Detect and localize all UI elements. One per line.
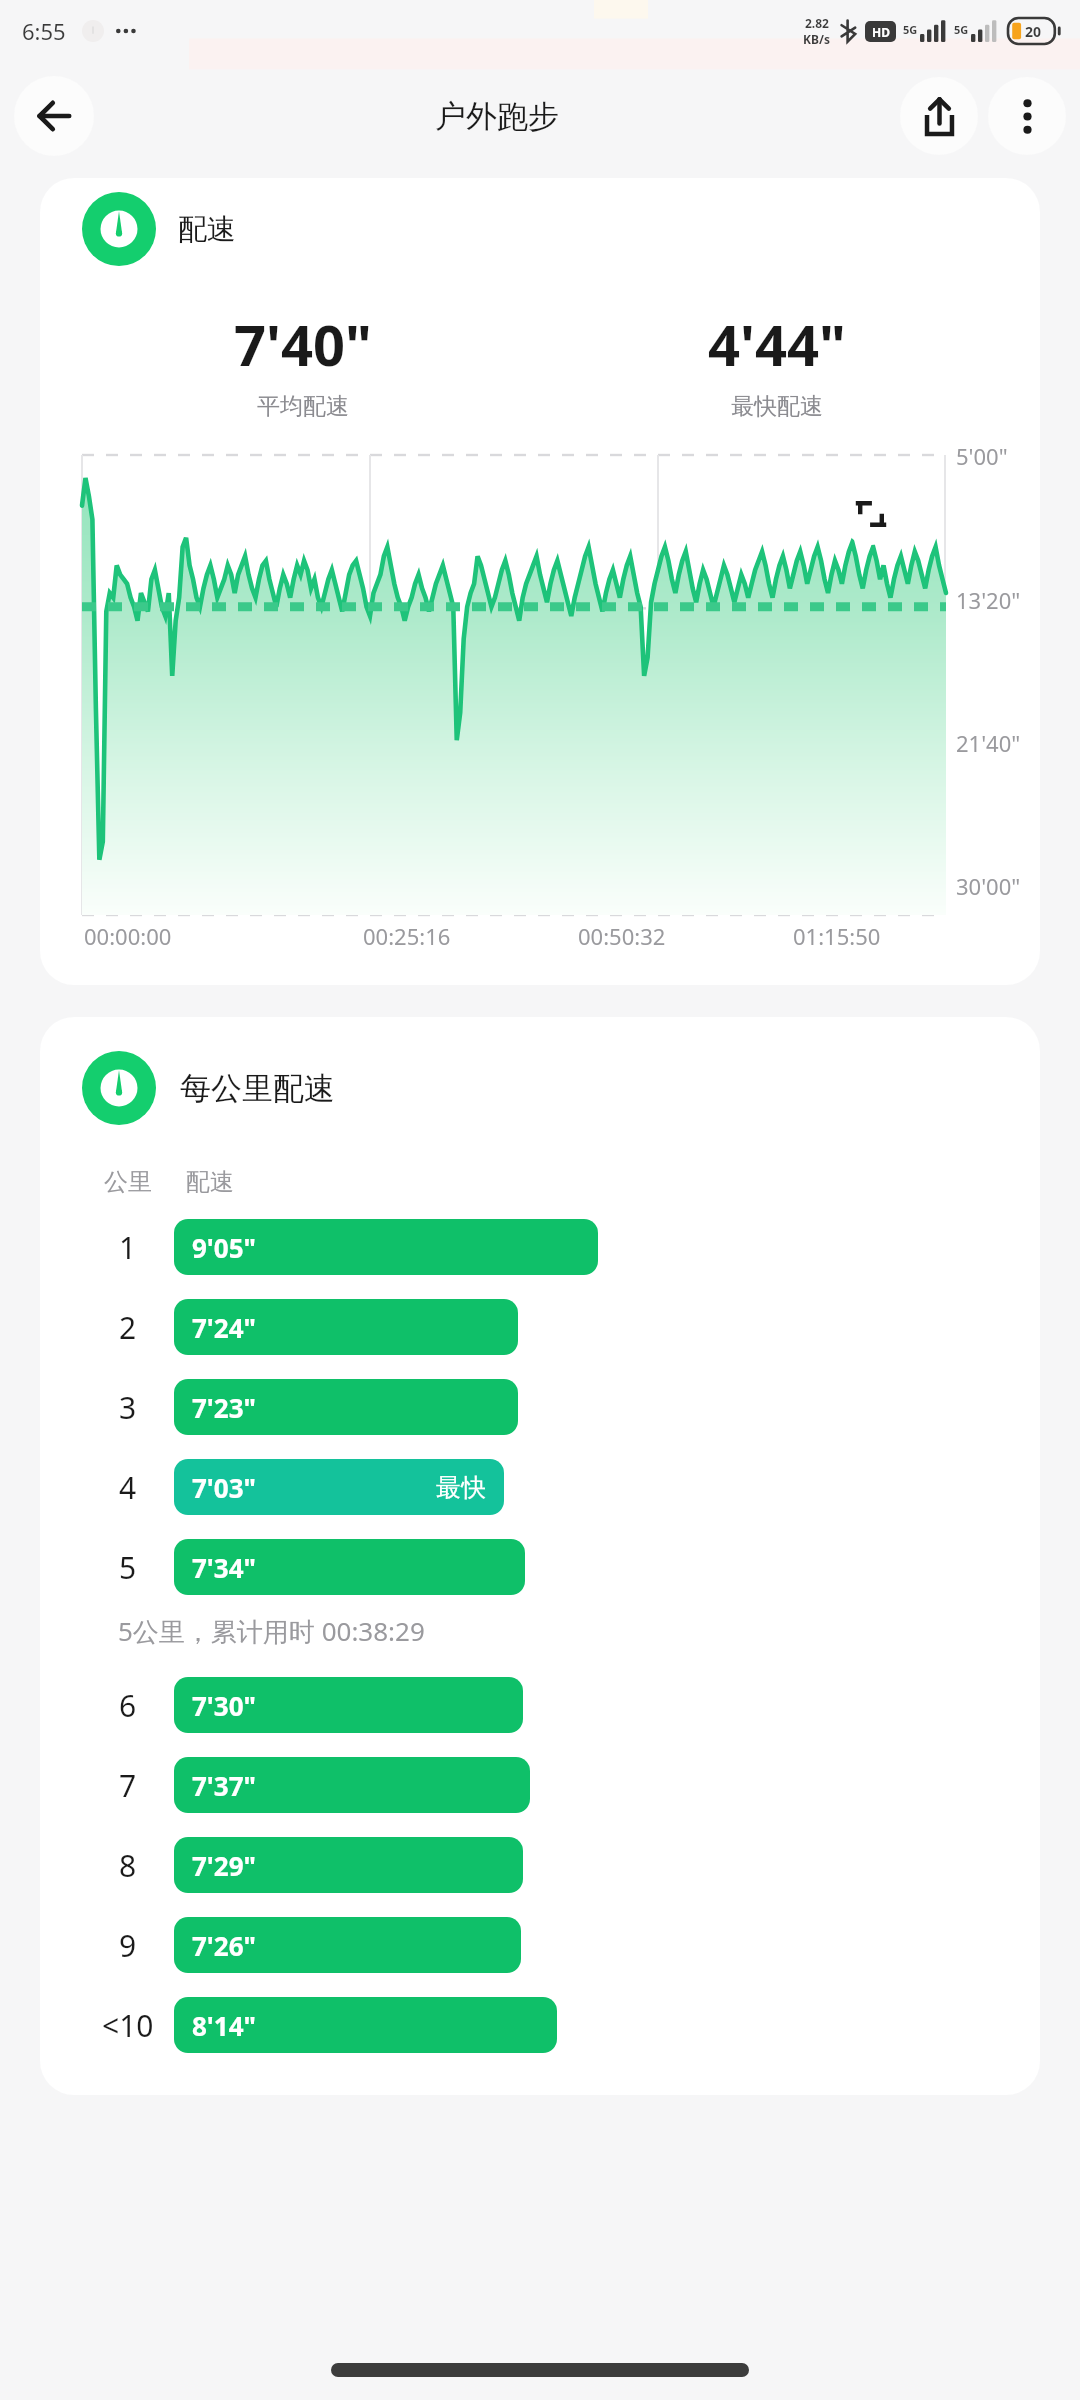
staticText: 5G [903,22,918,37]
staticText: 5公里，累计用时 00:38:29 [118,1613,425,1649]
staticText: KB/s [803,31,830,47]
staticText: 4 [119,1467,137,1508]
staticText: 5 [119,1547,137,1588]
staticText: 7 [119,1765,137,1806]
button[interactable]: 7 [82,1745,998,1825]
staticText: 配速 [186,1167,234,1197]
staticText: 最快 [436,1472,486,1503]
staticText: HD [872,24,890,40]
staticText: 8 [119,1845,137,1886]
button[interactable]: 配速 [82,192,1040,266]
staticText: 户外跑步 [435,97,559,136]
button[interactable]: Share [900,77,978,155]
staticText: 6 [119,1685,137,1726]
staticText: 公里 [104,1167,152,1197]
staticText: 2 [119,1307,137,1348]
staticText: 2.82 [805,15,829,31]
button[interactable]: 每公里配速 [82,1051,1040,1125]
staticText: 7'26" [192,1928,256,1963]
button[interactable]: Back [14,76,94,156]
staticText: 7'23" [192,1390,256,1425]
staticText: 平均配速 [257,392,349,421]
staticText: 7'03" [192,1470,256,1505]
button[interactable]: 1 [82,1207,998,1287]
staticText: 8'14" [192,2008,256,2043]
button[interactable]: More options [988,77,1066,155]
staticText: 21'40" [956,728,1021,758]
button[interactable]: 9 [82,1905,998,1985]
staticText: 7'24" [192,1310,256,1345]
staticText: 00:50:32 [578,921,666,951]
staticText: 每公里配速 [180,1069,335,1108]
staticText: 00:25:16 [363,921,451,951]
staticText: 最快配速 [731,392,823,421]
button[interactable]: 5 [82,1527,998,1607]
button[interactable]: 2 [82,1287,998,1367]
staticText: 配速 [178,211,236,248]
staticText: 00:00:00 [84,921,172,951]
staticText: 7'30" [192,1688,256,1723]
staticText: 9 [119,1925,137,1966]
staticText: 4'44" [708,306,846,382]
staticText: 7'29" [192,1848,256,1883]
staticText: 7'37" [192,1768,256,1803]
staticText: 7'40" [234,306,372,382]
staticText: 13'20" [956,585,1021,615]
staticText: 30'00" [956,871,1021,901]
staticText: 7'34" [192,1550,256,1585]
button[interactable]: 8 [82,1825,998,1905]
button[interactable]: 3 [82,1367,998,1447]
button[interactable]: <10 [82,1985,998,2065]
staticText: 9'05" [192,1230,256,1265]
staticText: 6:55 [22,16,66,46]
staticText: 5G [954,22,969,37]
staticText: 1 [119,1227,137,1268]
staticText: 20 [1025,22,1042,41]
button[interactable]: 4 [82,1447,998,1527]
staticText: 3 [119,1387,137,1428]
button[interactable]: Fullscreen [840,483,902,545]
staticText: <10 [102,2005,154,2046]
staticText: 5'00" [956,441,1008,471]
staticText: 01:15:50 [793,921,881,951]
button[interactable]: 6 [82,1665,998,1745]
